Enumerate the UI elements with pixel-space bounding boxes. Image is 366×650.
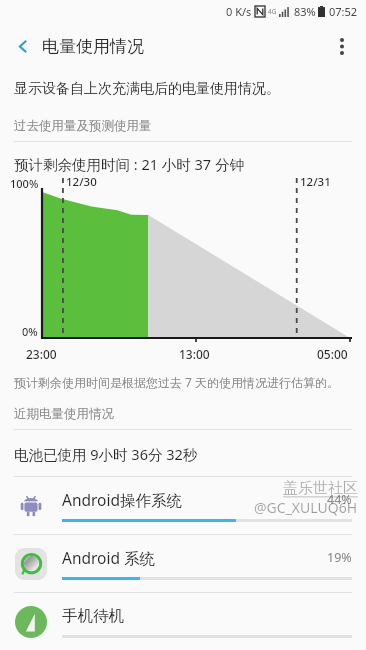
staticText: 显示设备自上次充满电后的电量使用情况。 <box>14 80 280 98</box>
staticText: 19% <box>327 549 352 566</box>
button[interactable]: Android 系统 <box>0 535 366 592</box>
staticText: 23:00 <box>26 346 57 362</box>
staticText: @GC_XULUQ6H <box>254 498 358 517</box>
staticText: 近期电量使用情况 <box>14 406 114 422</box>
staticText: 12/31 <box>300 174 331 190</box>
staticText: 电量使用情况 <box>42 36 144 57</box>
staticText: 12/30 <box>66 174 97 190</box>
button[interactable]: 手机待机 <box>0 593 366 650</box>
staticText: Android 系统 <box>62 547 327 568</box>
button[interactable]: More options <box>324 28 360 64</box>
staticText: 07:52 <box>329 4 358 19</box>
staticText: 盖乐世社区 <box>283 479 358 498</box>
staticText: 83% <box>294 4 316 19</box>
button[interactable]: Back <box>6 29 40 63</box>
staticText: 预计剩余使用时间是根据您过去 7 天的使用情况进行估算的。 <box>14 374 340 390</box>
staticText: 44% <box>327 491 352 508</box>
staticText: 0 K/s <box>226 4 252 19</box>
staticText: 手机待机 <box>62 606 352 626</box>
staticText: 预计剩余使用时间 : 21 小时 37 分钟 <box>14 154 244 174</box>
staticText: 100% <box>10 176 39 191</box>
staticText: 13:00 <box>179 346 210 362</box>
staticText: 4G <box>268 7 277 16</box>
staticText: 电池已使用 9小时 36分 32秒 <box>14 444 198 464</box>
staticText: 0% <box>22 324 38 339</box>
staticText: 过去使用量及预测使用量 <box>14 118 152 134</box>
staticText: 05:00 <box>317 346 348 362</box>
staticText: Android操作系统 <box>62 489 327 510</box>
button[interactable]: Android操作系统 <box>0 477 366 534</box>
